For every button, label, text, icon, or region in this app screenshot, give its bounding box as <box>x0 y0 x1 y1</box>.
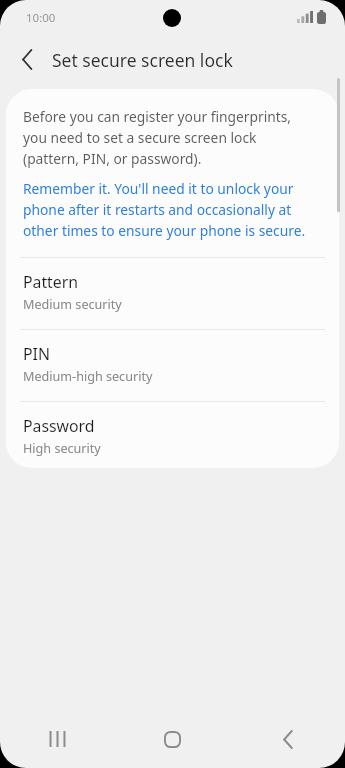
button[interactable]: Password <box>6 402 339 468</box>
button[interactable]: Recent apps <box>0 710 115 768</box>
staticText: Remember it. You'll need it to unlock yo… <box>23 179 306 240</box>
staticText: Medium security <box>23 296 122 313</box>
button[interactable]: Back <box>10 42 44 76</box>
staticText: Set secure screen lock <box>52 48 233 72</box>
staticText: Before you can register your fingerprint… <box>23 107 292 168</box>
staticText: High security <box>23 440 101 457</box>
staticText: Password <box>23 415 95 437</box>
button[interactable]: Home <box>115 710 230 768</box>
button[interactable]: Pattern <box>6 258 339 329</box>
button[interactable]: Back <box>230 710 345 768</box>
staticText: 10:00 <box>26 10 56 26</box>
staticText: Medium-high security <box>23 368 153 385</box>
button[interactable]: PIN <box>6 330 339 401</box>
staticText: PIN <box>23 343 50 365</box>
staticText: Pattern <box>23 271 79 293</box>
